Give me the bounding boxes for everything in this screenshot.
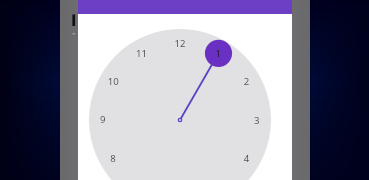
button[interactable]: Clock dial, 1 o'clock selected (0, 0, 369, 180)
